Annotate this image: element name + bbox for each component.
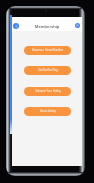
button[interactable]: Home xyxy=(75,23,80,28)
staticText: Enhance Your Rating xyxy=(35,89,61,93)
button[interactable]: Boost Listing xyxy=(24,107,71,116)
staticText: Boost Listing xyxy=(40,109,56,113)
staticText: Membership xyxy=(12,24,82,29)
staticText: Get Verified Tag xyxy=(38,68,58,72)
button[interactable]: Enhance Your Rating xyxy=(24,87,71,96)
button[interactable]: Become a Prime Member xyxy=(24,46,71,55)
button[interactable]: Get Verified Tag xyxy=(24,66,71,75)
staticText: Become a Prime Member xyxy=(32,48,63,52)
button[interactable]: Back xyxy=(13,23,19,29)
